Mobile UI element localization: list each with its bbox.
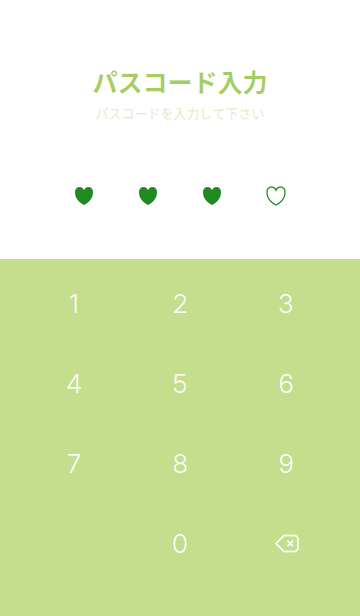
button[interactable]: 9 bbox=[233, 423, 339, 503]
staticText: パスコードを入力して下さい bbox=[95, 103, 264, 122]
staticText: 7 bbox=[67, 448, 81, 479]
staticText: 1 bbox=[69, 288, 79, 319]
button[interactable]: 7 bbox=[21, 423, 127, 503]
button[interactable]: Delete bbox=[233, 503, 339, 583]
button[interactable]: 2 bbox=[127, 263, 233, 343]
button[interactable]: 3 bbox=[233, 263, 339, 343]
staticText: 8 bbox=[172, 448, 187, 479]
button[interactable]: 0 bbox=[127, 503, 233, 583]
staticText: 5 bbox=[172, 368, 187, 399]
staticText: 3 bbox=[278, 288, 294, 319]
button[interactable]: 6 bbox=[233, 343, 339, 423]
staticText: 9 bbox=[278, 448, 293, 479]
staticText: 4 bbox=[66, 368, 82, 399]
button[interactable]: 4 bbox=[21, 343, 127, 423]
staticText: 0 bbox=[172, 528, 188, 559]
staticText: 6 bbox=[278, 368, 293, 399]
button[interactable]: 8 bbox=[127, 423, 233, 503]
button[interactable]: 1 bbox=[21, 263, 127, 343]
button[interactable]: 5 bbox=[127, 343, 233, 423]
staticText: パスコード入力 bbox=[92, 63, 267, 99]
staticText: 2 bbox=[172, 288, 187, 319]
